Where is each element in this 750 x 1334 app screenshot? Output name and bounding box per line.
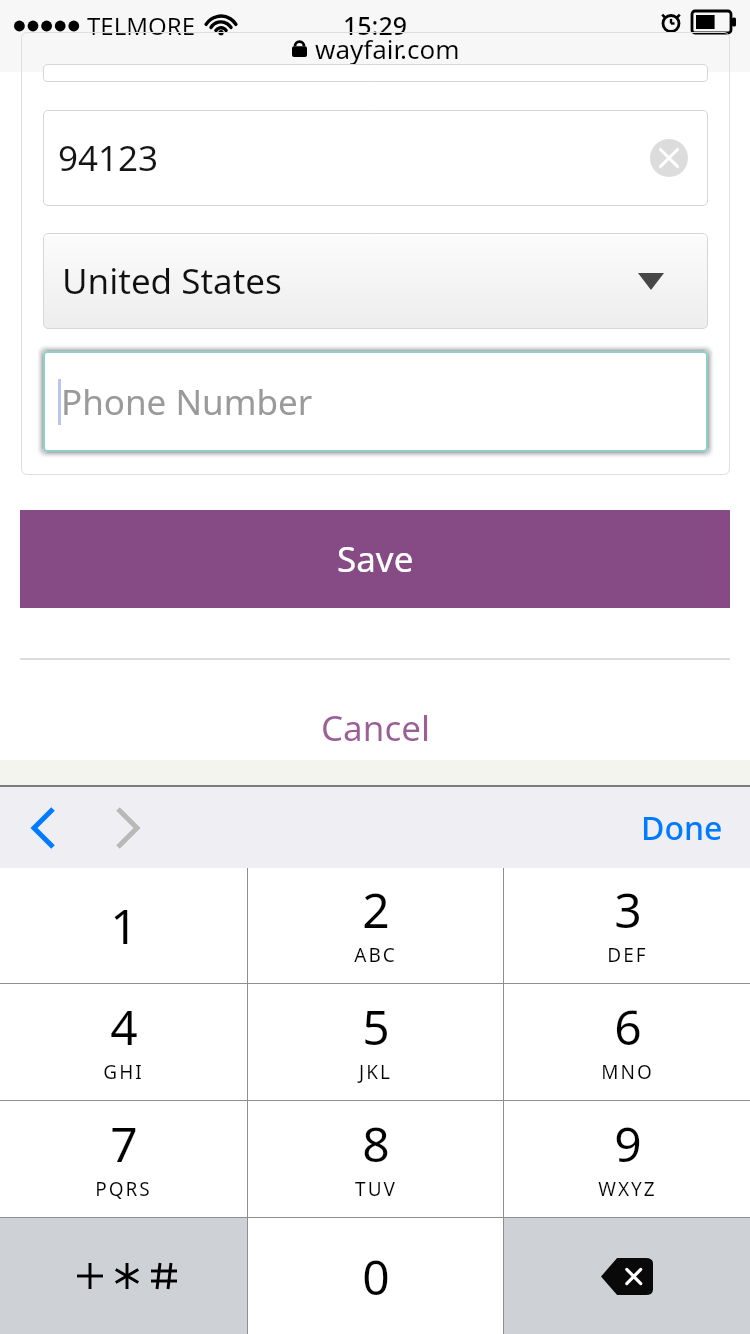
staticText: WXYZ — [598, 1176, 657, 1202]
staticText: Cancel — [321, 704, 430, 752]
staticText: TUV — [355, 1176, 397, 1202]
staticText: 6 — [614, 994, 642, 1059]
staticText: PQRS — [95, 1176, 152, 1202]
staticText: 3 — [614, 877, 642, 942]
button[interactable]: Phone Number — [43, 351, 708, 452]
staticText: MNO — [601, 1059, 654, 1085]
staticText: 2 — [362, 877, 390, 942]
staticText: JKL — [359, 1059, 392, 1085]
staticText: wayfair.com — [315, 31, 460, 66]
button[interactable]: Previous field — [12, 797, 74, 859]
staticText: TELMORE — [87, 9, 196, 42]
staticText: 5 — [362, 994, 390, 1059]
staticText: 8 — [362, 1111, 390, 1176]
button[interactable]: 4 — [0, 984, 247, 1100]
button[interactable]: 94123 — [43, 110, 708, 206]
button[interactable]: Symbols plus asterisk hash — [0, 1218, 247, 1334]
staticText: 0 — [362, 1244, 390, 1309]
button[interactable]: 2 — [248, 868, 503, 983]
staticText: Save — [337, 535, 414, 583]
button[interactable]: Backspace — [504, 1218, 750, 1334]
button[interactable]: Cancel — [297, 692, 454, 764]
button[interactable]: 5 — [248, 984, 503, 1100]
button[interactable]: 0 — [248, 1218, 503, 1334]
button[interactable]: 1 — [0, 868, 247, 983]
button[interactable]: Clear text — [649, 138, 689, 178]
staticText: 7 — [110, 1111, 138, 1176]
staticText: Done — [641, 806, 723, 850]
staticText: 4 — [110, 994, 138, 1059]
button[interactable]: 3 — [504, 868, 750, 983]
staticText: United States — [62, 257, 282, 305]
button[interactable]: 9 — [504, 1101, 750, 1217]
button[interactable]: Next field — [96, 797, 158, 859]
button[interactable]: 8 — [248, 1101, 503, 1217]
staticText: ABC — [354, 942, 397, 968]
button[interactable]: wayfair.com — [291, 31, 460, 66]
button[interactable]: Done — [633, 794, 731, 862]
button[interactable]: Save — [20, 510, 730, 608]
button[interactable]: 7 — [0, 1101, 247, 1217]
button[interactable]: United States — [43, 233, 708, 329]
staticText: 1 — [110, 893, 138, 958]
button[interactable]: 6 — [504, 984, 750, 1100]
staticText: DEF — [607, 942, 648, 968]
staticText: GHI — [103, 1059, 144, 1085]
staticText: 15:29 — [343, 8, 408, 42]
staticText: 9 — [614, 1111, 642, 1176]
staticText: Phone Number — [61, 378, 313, 426]
staticText: 94123 — [58, 134, 159, 182]
